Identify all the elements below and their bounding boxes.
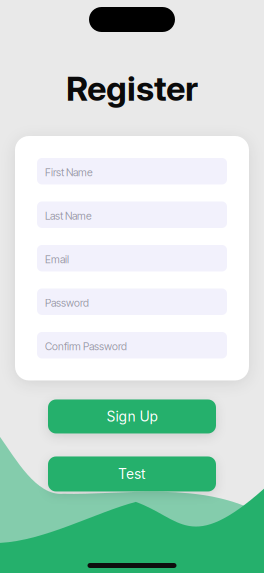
button[interactable]: Test (48, 456, 216, 491)
staticText: Email (45, 253, 69, 266)
staticText: Sign Up (106, 408, 157, 425)
staticText: Register (66, 68, 198, 109)
staticText: Test (118, 466, 146, 482)
staticText: First Name (45, 166, 93, 179)
staticText: Password (45, 297, 89, 309)
staticText: Confirm Password (45, 340, 127, 353)
staticText: Last Name (45, 210, 92, 222)
button[interactable]: Sign Up (48, 399, 216, 433)
